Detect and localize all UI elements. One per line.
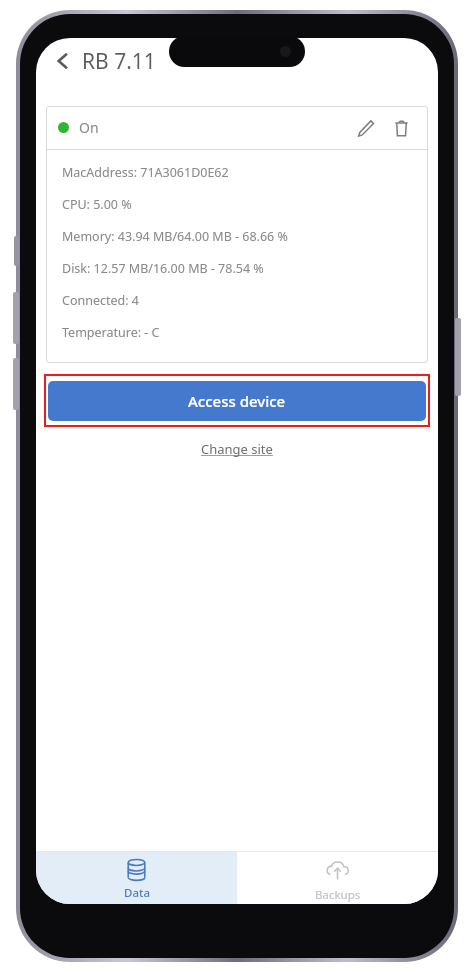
button[interactable]: Edit: [350, 113, 380, 143]
staticText: Backups: [315, 887, 361, 903]
staticText: Memory: 43.94 MB/64.00 MB - 68.66 %: [62, 228, 288, 245]
button[interactable]: Access device: [48, 381, 426, 421]
staticText: On: [79, 118, 99, 137]
button[interactable]: Delete: [386, 113, 416, 143]
staticText: CPU: 5.00 %: [62, 196, 132, 213]
staticText: Disk: 12.57 MB/16.00 MB - 78.54 %: [62, 260, 264, 277]
button[interactable]: Backups: [237, 852, 438, 904]
button[interactable]: Data: [36, 852, 237, 904]
staticText: RB 7.11: [82, 47, 156, 76]
staticText: Data: [124, 885, 150, 901]
staticText: Access device: [188, 391, 286, 411]
button[interactable]: Back: [46, 44, 80, 78]
button[interactable]: Change site: [201, 440, 273, 458]
staticText: Temperature: - C: [62, 324, 160, 341]
staticText: Connected: 4: [62, 292, 139, 309]
staticText: MacAddress: 71A3061D0E62: [62, 164, 229, 181]
